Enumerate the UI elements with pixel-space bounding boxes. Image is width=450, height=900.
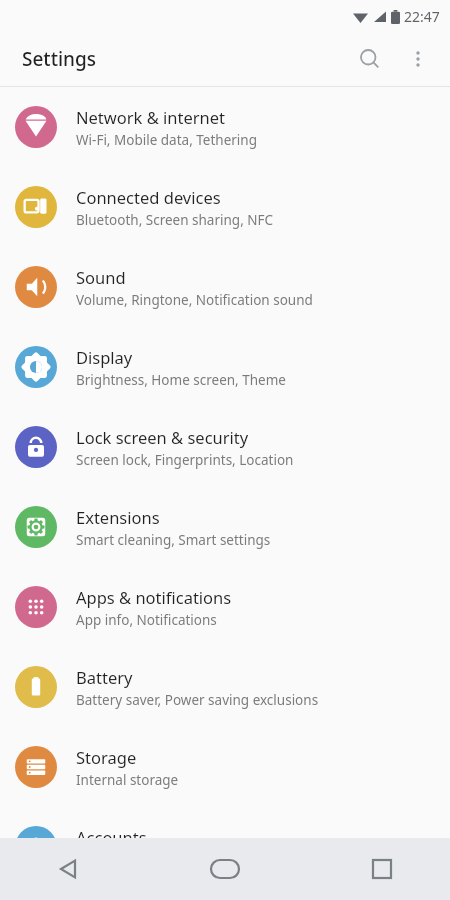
button[interactable]: Storage: [0, 727, 450, 807]
button[interactable]: More options: [394, 35, 442, 83]
button[interactable]: Accounts: [0, 807, 450, 887]
button[interactable]: Extensions: [0, 487, 450, 567]
staticText: Bluetooth, Screen sharing, NFC: [76, 211, 274, 229]
staticText: Display: [76, 346, 133, 368]
button[interactable]: Home: [197, 841, 253, 897]
staticText: Screen lock, Fingerprints, Location: [76, 451, 294, 469]
staticText: Apps & notifications: [76, 586, 232, 608]
staticText: Connected devices: [76, 186, 221, 208]
staticText: Battery: [76, 666, 133, 688]
staticText: Network & internet: [76, 106, 226, 128]
button[interactable]: Battery: [0, 647, 450, 727]
staticText: Extensions: [76, 506, 160, 528]
staticText: Volume, Ringtone, Notification sound: [76, 291, 313, 309]
button[interactable]: Search: [346, 35, 394, 83]
button[interactable]: Display: [0, 327, 450, 407]
staticText: Sound: [76, 266, 126, 288]
staticText: Wi-Fi, Mobile data, Tethering: [76, 131, 257, 149]
button[interactable]: Apps & notifications: [0, 567, 450, 647]
staticText: Accounts: [76, 826, 147, 848]
staticText: 22:47: [404, 7, 440, 26]
staticText: Internal storage: [76, 771, 179, 789]
staticText: App info, Notifications: [76, 611, 217, 629]
button[interactable]: Connected devices: [0, 167, 450, 247]
button[interactable]: Lock screen & security: [0, 407, 450, 487]
button[interactable]: Sound: [0, 247, 450, 327]
staticText: Settings: [22, 46, 96, 72]
staticText: Battery saver, Power saving exclusions: [76, 691, 319, 709]
staticText: Storage: [76, 746, 137, 768]
button[interactable]: Network & internet: [0, 87, 450, 167]
button[interactable]: Recent apps: [354, 841, 410, 897]
staticText: Lock screen & security: [76, 426, 249, 448]
staticText: Brightness, Home screen, Theme: [76, 371, 286, 389]
button[interactable]: Back: [40, 841, 96, 897]
staticText: Smart cleaning, Smart settings: [76, 531, 271, 549]
